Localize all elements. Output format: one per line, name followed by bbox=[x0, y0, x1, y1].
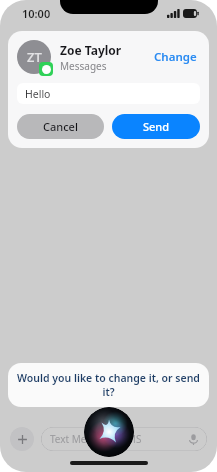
staticText: Would you like to change it, or send it? bbox=[16, 371, 201, 399]
staticText: Text Message · SMS bbox=[50, 432, 142, 446]
staticText: Cancel bbox=[43, 119, 78, 134]
button[interactable]: ZT bbox=[17, 40, 200, 74]
button[interactable]: Would you like to change it, or send it? bbox=[8, 363, 209, 407]
staticText: 10:00 bbox=[22, 6, 51, 21]
button[interactable]: Send bbox=[112, 114, 200, 139]
button[interactable]: Cancel bbox=[17, 114, 104, 139]
button[interactable]: Dictate bbox=[187, 433, 200, 446]
button[interactable]: Add attachment bbox=[10, 427, 34, 451]
button[interactable]: Text Message · SMS bbox=[41, 427, 207, 451]
staticText: Hello bbox=[25, 87, 51, 101]
staticText: ZT bbox=[27, 48, 42, 66]
staticText: Zoe Taylor bbox=[60, 42, 122, 58]
staticText: Change bbox=[154, 49, 197, 65]
button[interactable]: Change bbox=[151, 46, 200, 68]
staticText: Send bbox=[143, 119, 170, 134]
staticText: Messages bbox=[60, 59, 107, 73]
button[interactable]: Hello bbox=[17, 83, 200, 104]
button[interactable]: Siri bbox=[84, 407, 134, 457]
